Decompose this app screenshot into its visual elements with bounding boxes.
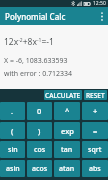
button[interactable]: acos [27, 160, 52, 177]
button[interactable]: cos [27, 141, 52, 158]
staticText: Polynomial Calc [5, 11, 66, 22]
button[interactable]: sqrt [82, 141, 108, 158]
button[interactable]: CALCULATE [44, 90, 82, 100]
staticText: 12:50 [93, 0, 106, 7]
staticText: CALCULATE [45, 91, 81, 100]
staticText: ( [11, 126, 14, 136]
button[interactable]: + [82, 102, 108, 120]
staticText: . [11, 106, 14, 116]
staticText: ) [38, 126, 41, 136]
staticText: RESET [86, 91, 105, 100]
button[interactable]: . [0, 102, 25, 120]
button[interactable]: exp [54, 122, 80, 139]
button[interactable]: 0 [27, 102, 52, 120]
button[interactable]: More options [95, 7, 108, 25]
button[interactable]: ( [0, 122, 25, 139]
staticText: atan [59, 164, 75, 174]
staticText: tan [61, 145, 73, 155]
staticText: abs [89, 164, 101, 174]
button[interactable]: asin [0, 160, 25, 177]
staticText: X = -6, 1083.633593 [4, 56, 68, 66]
button[interactable]: tan [54, 141, 80, 158]
staticText: sin [8, 145, 18, 155]
staticText: ^ [65, 106, 70, 116]
button[interactable]: ^ [54, 102, 80, 120]
staticText: = [93, 126, 98, 136]
staticText: + [93, 106, 98, 116]
staticText: sqrt [88, 145, 102, 155]
staticText: exp [61, 126, 74, 136]
button[interactable]: = [82, 122, 108, 139]
staticText: cos [34, 145, 46, 155]
button[interactable]: RESET [84, 90, 107, 100]
staticText: acos [32, 164, 48, 174]
staticText: 0 [37, 106, 42, 116]
button[interactable]: ) [27, 122, 52, 139]
staticText: 12x-2+8x-1=-1 [4, 36, 54, 48]
staticText: with error : 0.712334 [4, 69, 73, 79]
button[interactable]: atan [54, 160, 80, 177]
button[interactable]: abs [82, 160, 108, 177]
staticText: asin [6, 164, 20, 174]
button[interactable]: sin [0, 141, 25, 158]
